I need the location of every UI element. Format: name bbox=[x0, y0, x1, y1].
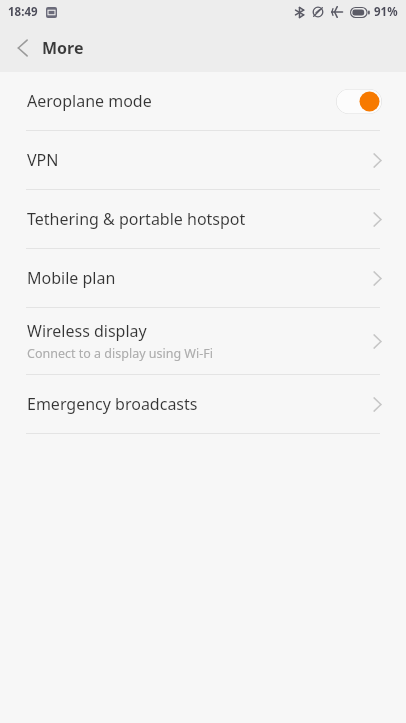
staticText: Mobile plan bbox=[27, 267, 116, 289]
staticText: VPN bbox=[27, 149, 59, 171]
staticText: Emergency broadcasts bbox=[27, 393, 198, 415]
staticText: 18:49 bbox=[8, 4, 38, 20]
staticText: More bbox=[42, 37, 84, 59]
button[interactable]: Back bbox=[0, 26, 44, 70]
other: Aeroplane mode toggle bbox=[336, 89, 382, 114]
staticText: Aeroplane mode bbox=[27, 90, 336, 112]
button[interactable]: Emergency broadcasts bbox=[0, 375, 406, 433]
button[interactable]: VPN bbox=[0, 131, 406, 189]
staticText: Tethering & portable hotspot bbox=[27, 208, 246, 230]
button[interactable]: Mobile plan bbox=[0, 249, 406, 307]
staticText: 91% bbox=[374, 4, 398, 20]
button[interactable]: Wireless display bbox=[0, 308, 406, 374]
staticText: Wireless display bbox=[27, 320, 147, 342]
staticText: Connect to a display using Wi-Fi bbox=[27, 345, 213, 362]
button[interactable]: Tethering & portable hotspot bbox=[0, 190, 406, 248]
button[interactable]: Aeroplane mode bbox=[0, 72, 406, 130]
